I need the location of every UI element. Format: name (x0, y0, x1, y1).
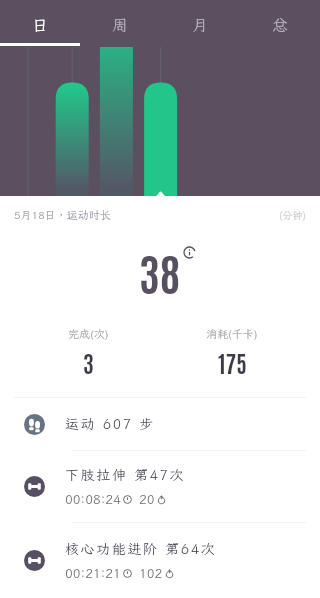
button[interactable]: 日 (0, 0, 80, 49)
staticText: 38 (139, 243, 181, 300)
staticText: 总 (272, 14, 289, 35)
button[interactable]: 运动 607 步 (0, 398, 320, 450)
staticText: 运动 607 步 (65, 415, 155, 433)
staticText: 20 (139, 491, 155, 508)
staticText: 00:08:24 (65, 491, 121, 508)
button[interactable]: Info (183, 246, 196, 259)
staticText: 3 (83, 347, 94, 377)
staticText: 周 (112, 14, 129, 35)
staticText: 核心功能进阶 第64次 (65, 540, 217, 558)
staticText: 下肢拉伸 第47次 (65, 466, 186, 484)
staticText: 102 (139, 565, 163, 582)
staticText: 5月18日，运动时长 (14, 208, 111, 222)
staticText: 日 (32, 14, 49, 35)
staticText: 完成(次) (68, 327, 109, 341)
staticText: (分钟) (279, 209, 306, 222)
button[interactable]: 周 (80, 0, 160, 49)
button[interactable]: 月 (160, 0, 240, 49)
staticText: 月 (192, 14, 209, 35)
staticText: 消耗(千卡) (206, 327, 258, 341)
button[interactable]: 下肢拉伸 第47次 (0, 451, 320, 522)
button[interactable]: 总 (240, 0, 320, 49)
button[interactable]: 核心功能进阶 第64次 (0, 523, 320, 598)
staticText: 00:21:21 (65, 565, 121, 582)
staticText: 175 (218, 347, 247, 377)
